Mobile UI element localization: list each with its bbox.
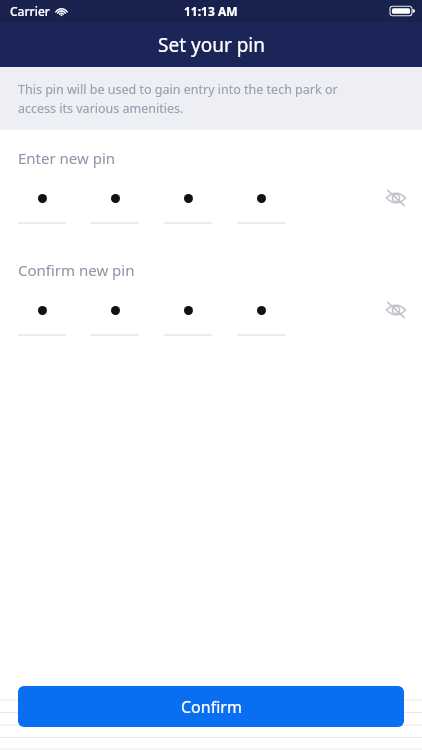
button[interactable] [91, 184, 139, 224]
button[interactable] [18, 184, 66, 224]
staticText: 11:13 AM [184, 3, 238, 19]
staticText: Carrier [10, 3, 50, 19]
staticText: Set your pin [158, 32, 265, 58]
staticText: Confirm new pin [18, 260, 135, 280]
button[interactable] [237, 296, 285, 336]
button[interactable] [237, 184, 285, 224]
button[interactable] [164, 184, 212, 224]
button[interactable]: Toggle pin visibility [382, 298, 410, 322]
button[interactable]: Confirm [18, 686, 404, 727]
button[interactable] [164, 296, 212, 336]
staticText: Confirm [181, 696, 242, 718]
button[interactable] [18, 296, 66, 336]
button[interactable]: Toggle pin visibility [382, 186, 410, 210]
staticText: This pin will be used to gain entry into… [18, 81, 376, 117]
staticText: Enter new pin [18, 148, 116, 168]
button[interactable] [91, 296, 139, 336]
